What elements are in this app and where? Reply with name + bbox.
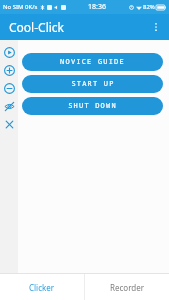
staticText: No SIM 0K/s	[3, 3, 38, 11]
button[interactable]: More options	[143, 14, 169, 40]
staticText: 18:36	[88, 2, 106, 12]
button[interactable]: START UP	[22, 75, 163, 93]
button[interactable]: Hide	[0, 97, 18, 115]
staticText: NOVICE GUIDE	[60, 57, 125, 67]
button[interactable]: Add	[0, 61, 18, 79]
button[interactable]: NOVICE GUIDE	[22, 53, 163, 71]
staticText: SHUT DOWN	[68, 101, 117, 111]
staticText: Clicker	[29, 282, 55, 293]
button[interactable]: Close	[0, 115, 18, 133]
staticText: 82%	[143, 3, 155, 11]
button[interactable]: Remove	[0, 79, 18, 97]
button[interactable]: SHUT DOWN	[22, 97, 163, 115]
staticText: Recorder	[110, 282, 145, 293]
staticText: Cool-Click	[9, 19, 65, 35]
staticText: START UP	[71, 79, 115, 89]
button[interactable]: Recorder	[85, 274, 169, 300]
button[interactable]: Clicker	[0, 274, 84, 300]
button[interactable]: Play	[0, 43, 18, 61]
